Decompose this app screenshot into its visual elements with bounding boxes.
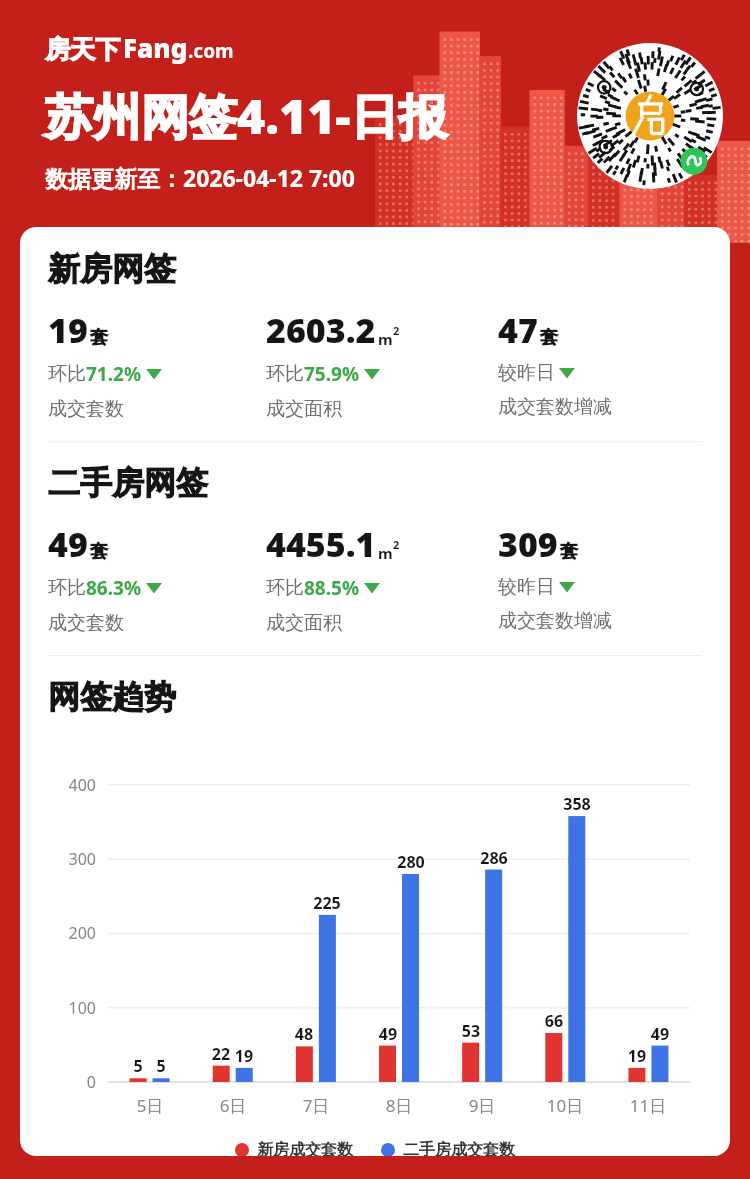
staticText: 成交套数增减 [498, 609, 612, 633]
staticText: 66 [524, 1010, 584, 1032]
staticText: 5 [108, 1055, 168, 1077]
staticText: 成交套数 [48, 397, 124, 421]
staticText: 200 [38, 922, 96, 944]
staticText: 较昨日 [498, 361, 555, 385]
staticText: 49 [48, 521, 88, 567]
staticText: 5 [131, 1055, 191, 1077]
staticText: 房天下 [45, 34, 120, 65]
staticText: 套 [90, 540, 108, 563]
staticText: 75.9% [304, 361, 360, 387]
staticText: 二手房网签 [48, 463, 208, 503]
staticText: 22 [191, 1043, 251, 1065]
staticText: 309 [498, 521, 558, 567]
staticText: 286 [464, 847, 524, 869]
staticText: 成交面积 [266, 611, 342, 635]
staticText: m [378, 329, 393, 349]
staticText: m [378, 543, 393, 563]
staticText: 48 [274, 1023, 334, 1045]
staticText: 47 [498, 307, 538, 353]
staticText: 4455.1 [266, 521, 376, 567]
staticText: 49 [630, 1023, 690, 1045]
staticText: 新房成交套数 [257, 1140, 353, 1156]
staticText: 套 [90, 326, 108, 349]
button[interactable]: 小程序二维码 [577, 43, 723, 189]
staticText: 6日 [198, 1094, 268, 1117]
staticText: 0 [38, 1071, 96, 1093]
staticText: 9日 [447, 1094, 517, 1117]
staticText: 100 [38, 997, 96, 1019]
staticText: 苏州网签4.11-日报 [45, 83, 447, 149]
staticText: 400 [38, 774, 96, 796]
staticText: 71.2% [86, 361, 142, 387]
staticText: .com [188, 38, 234, 64]
staticText: 2603.2 [266, 307, 376, 353]
staticText: 环比 [266, 576, 304, 600]
staticText: 5日 [115, 1094, 185, 1117]
staticText: 8日 [364, 1094, 434, 1117]
staticText: 19 [48, 307, 88, 353]
staticText: 数据更新至：2026-04-12 7:00 [45, 162, 355, 193]
staticText: 49 [358, 1023, 418, 1045]
staticText: 86.3% [86, 575, 142, 601]
staticText: 7日 [281, 1094, 351, 1117]
staticText: 280 [381, 851, 441, 873]
staticText: 225 [297, 892, 357, 914]
staticText: 19 [214, 1045, 274, 1067]
button[interactable]: 新房成交套数 [235, 1140, 353, 1156]
staticText: 88.5% [304, 575, 360, 601]
staticText: 较昨日 [498, 575, 555, 599]
staticText: 11日 [613, 1094, 683, 1117]
staticText: 成交套数增减 [498, 395, 612, 419]
staticText: 环比 [266, 362, 304, 386]
staticText: 新房网签 [48, 249, 176, 289]
staticText: 套 [540, 326, 558, 349]
staticText: 53 [441, 1020, 501, 1042]
staticText: 19 [607, 1045, 667, 1067]
staticText: 10日 [530, 1094, 600, 1117]
staticText: 2 [393, 323, 400, 338]
staticText: Fang [123, 30, 188, 65]
staticText: 358 [547, 793, 607, 815]
staticText: 网签趋势 [48, 677, 176, 717]
staticText: 环比 [48, 576, 86, 600]
staticText: 套 [560, 540, 578, 563]
staticText: 环比 [48, 362, 86, 386]
staticText: 300 [38, 848, 96, 870]
staticText: 成交面积 [266, 397, 342, 421]
staticText: 2 [393, 537, 400, 552]
staticText: 二手房成交套数 [403, 1140, 515, 1156]
button[interactable]: 二手房成交套数 [381, 1140, 515, 1156]
staticText: 成交套数 [48, 611, 124, 635]
